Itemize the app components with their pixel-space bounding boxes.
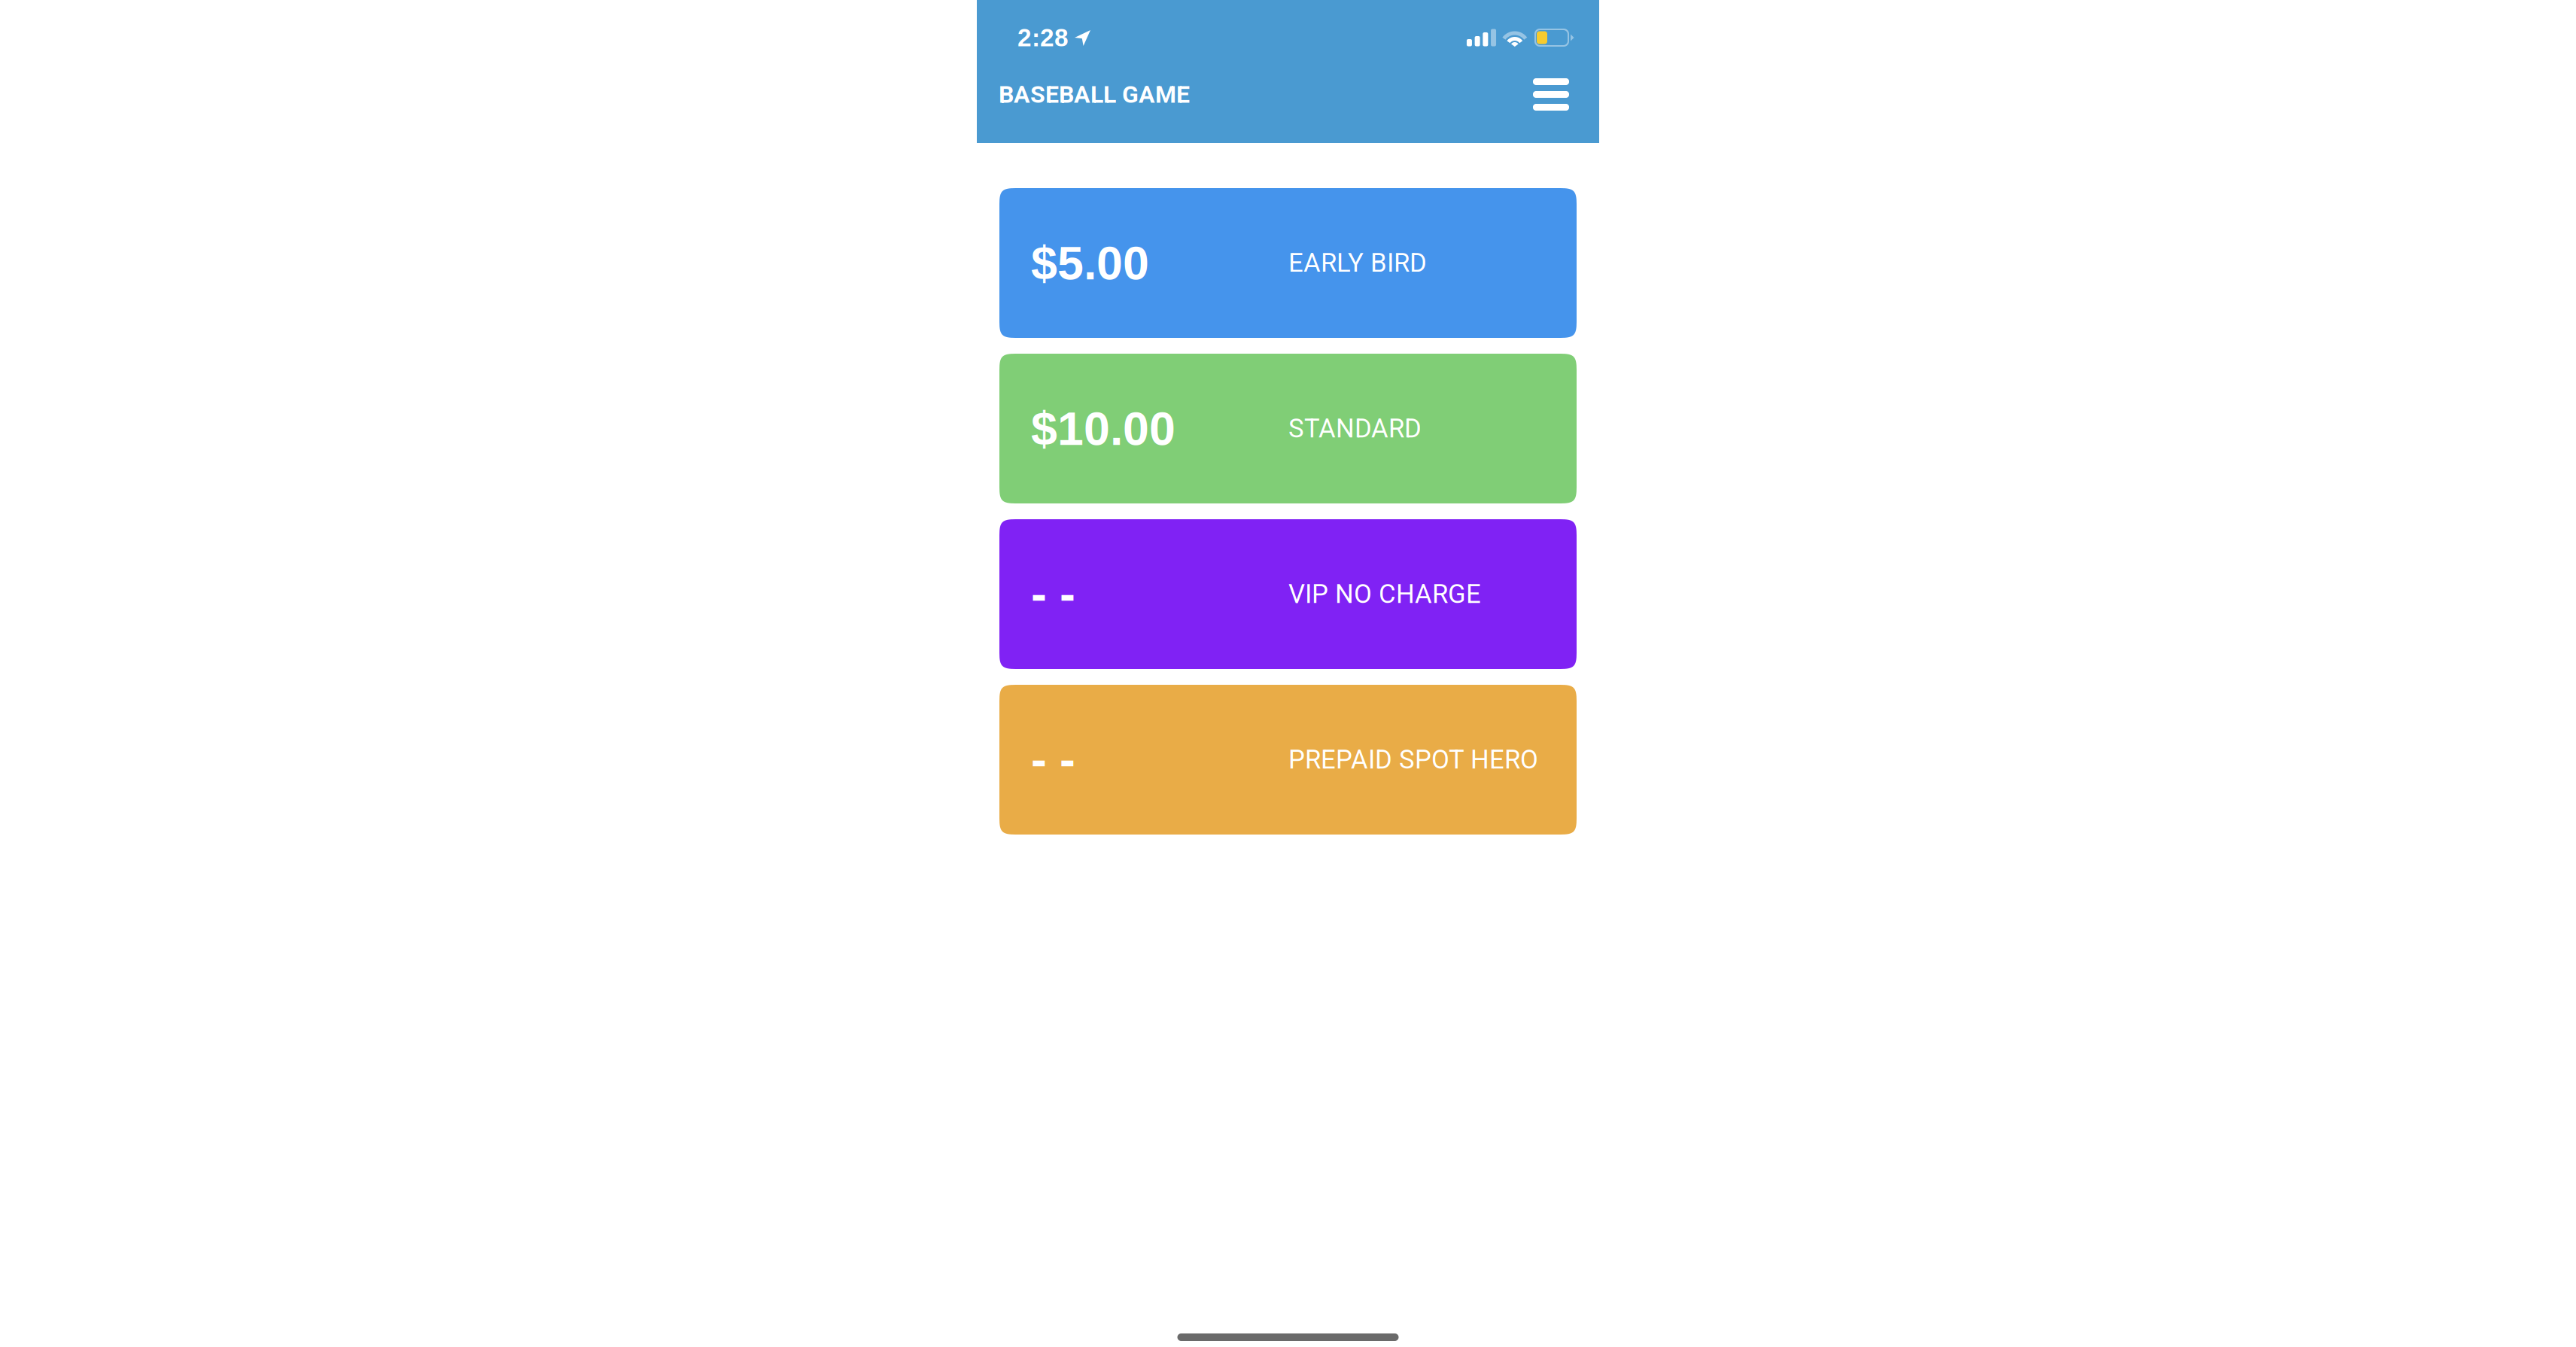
staticText: EARLY BIRD [1288, 248, 1427, 278]
staticText: VIP NO CHARGE [1288, 579, 1481, 609]
staticText: $5.00 [1031, 237, 1149, 289]
button[interactable]: - - [999, 519, 1577, 669]
staticText: - - [1031, 568, 1075, 620]
staticText: 2:28 [1017, 24, 1069, 52]
staticText: $10.00 [1031, 402, 1175, 455]
staticText: PREPAID SPOT HERO [1288, 744, 1538, 775]
staticText: STANDARD [1288, 413, 1422, 444]
button[interactable]: - - [999, 685, 1577, 835]
staticText: BASEBALL GAME [999, 80, 1190, 109]
button[interactable]: $5.00 [999, 188, 1577, 338]
button[interactable]: $10.00 [999, 354, 1577, 503]
staticText: - - [1031, 733, 1075, 786]
button[interactable]: Menu [1518, 68, 1576, 121]
